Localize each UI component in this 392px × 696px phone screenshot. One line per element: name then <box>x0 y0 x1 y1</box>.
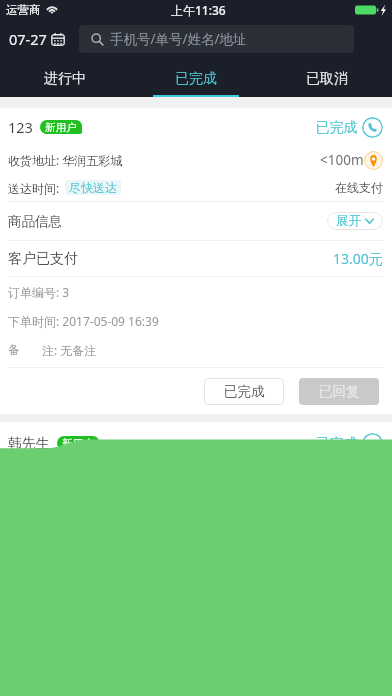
staticText: 新用户 <box>45 121 77 134</box>
staticText: 备 <box>8 342 20 357</box>
staticText: 13.00元 <box>333 249 383 268</box>
staticText: 运营商 <box>6 3 41 17</box>
staticText: 注: 无备注 <box>42 342 97 358</box>
button[interactable]: 已完成 <box>130 58 261 97</box>
button[interactable]: 已回复 <box>299 378 379 405</box>
staticText: 商品信息 <box>8 213 62 230</box>
staticText: 客户已支付 <box>8 250 78 268</box>
staticText: 已完成 <box>175 70 217 88</box>
staticText: 123 <box>8 117 33 137</box>
staticText: 07-27 <box>9 29 47 49</box>
staticText: 已完成 <box>316 119 358 136</box>
button[interactable]: 展开 <box>327 212 383 230</box>
button[interactable]: 已完成 <box>204 378 284 405</box>
staticText: 已回复 <box>319 383 360 400</box>
staticText: 韩先生 <box>8 435 50 452</box>
staticText: 展开 <box>336 213 361 229</box>
button[interactable]: 进行中 <box>0 58 130 97</box>
staticText: 收货地址: 华润五彩城 <box>8 152 123 168</box>
staticText: 已完成 <box>224 383 265 400</box>
button[interactable]: 已取消 <box>261 58 392 97</box>
staticText: 手机号/单号/姓名/地址 <box>110 30 247 48</box>
staticText: 下单时间: 2017-05-09 16:39 <box>8 313 159 329</box>
staticText: 送达时间: <box>8 180 60 196</box>
button[interactable]: 手机号/单号/姓名/地址 <box>79 25 354 53</box>
button[interactable]: 查看地图 <box>364 151 383 170</box>
staticText: 新用户 <box>62 437 94 450</box>
staticText: 尽快送达 <box>69 180 117 195</box>
staticText: 在线支付 <box>335 180 383 195</box>
button[interactable]: 07-27 <box>0 29 79 49</box>
staticText: 订单编号: 3 <box>8 284 70 300</box>
staticText: <100m <box>320 151 364 169</box>
button[interactable]: 拨打电话 <box>362 117 383 138</box>
staticText: 上午11:36 <box>171 2 226 18</box>
staticText: 已完成 <box>316 435 358 452</box>
staticText: 已取消 <box>306 70 348 88</box>
button[interactable]: 拨打电话 <box>362 433 383 454</box>
staticText: 进行中 <box>44 70 86 88</box>
